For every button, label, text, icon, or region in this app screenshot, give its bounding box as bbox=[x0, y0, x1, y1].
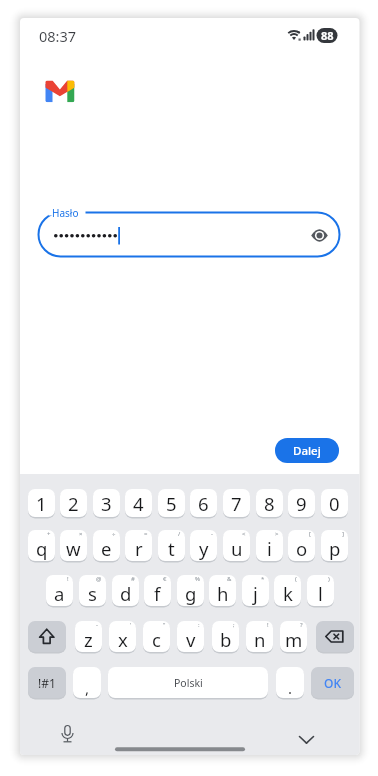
staticText: 9 bbox=[296, 491, 307, 516]
staticText: j bbox=[253, 581, 258, 606]
staticText: 8 bbox=[264, 491, 275, 516]
button[interactable] bbox=[307, 223, 332, 248]
staticText: n bbox=[254, 627, 266, 652]
button[interactable]: u bbox=[223, 530, 250, 561]
staticText: ÷ bbox=[112, 530, 116, 538]
staticText: h bbox=[217, 581, 229, 606]
button[interactable]: s bbox=[79, 575, 106, 606]
staticText: < bbox=[242, 530, 246, 538]
staticText: 4 bbox=[133, 491, 144, 516]
staticText: g bbox=[185, 581, 197, 606]
button[interactable]: f bbox=[144, 575, 171, 606]
staticText: ; bbox=[233, 621, 235, 629]
staticText: Dalej bbox=[293, 443, 321, 459]
button[interactable]: b bbox=[212, 621, 239, 652]
button[interactable]: k bbox=[274, 575, 301, 606]
button[interactable] bbox=[56, 722, 80, 746]
staticText: € bbox=[163, 575, 167, 583]
staticText: ? bbox=[300, 621, 303, 629]
button[interactable]: h bbox=[209, 575, 236, 606]
button[interactable]: p bbox=[321, 530, 348, 561]
button[interactable]: 1 bbox=[28, 489, 55, 517]
staticText: 6 bbox=[198, 491, 209, 516]
button[interactable]: d bbox=[112, 575, 139, 606]
staticText: 88 bbox=[321, 28, 334, 43]
staticText: 2 bbox=[68, 491, 79, 516]
button[interactable]: e bbox=[93, 530, 120, 561]
button[interactable] bbox=[316, 621, 354, 652]
button[interactable]: 7 bbox=[223, 489, 250, 517]
staticText: 0 bbox=[329, 491, 340, 516]
button[interactable]: l bbox=[307, 575, 334, 606]
button[interactable]: 8 bbox=[256, 489, 283, 517]
button[interactable]: c bbox=[143, 621, 170, 652]
staticText: q bbox=[36, 536, 48, 561]
button[interactable]: a bbox=[46, 575, 73, 606]
staticText: ( bbox=[295, 575, 297, 583]
staticText: m bbox=[285, 627, 303, 652]
button[interactable]: !#1 bbox=[28, 667, 66, 698]
staticText: t bbox=[168, 536, 175, 561]
button[interactable]: z bbox=[75, 621, 102, 652]
button[interactable]: o bbox=[288, 530, 315, 561]
button[interactable]: 6 bbox=[190, 489, 217, 517]
button[interactable]: . bbox=[276, 667, 304, 698]
button[interactable]: , bbox=[73, 667, 101, 698]
staticText: Hasło bbox=[52, 206, 79, 220]
button[interactable]: w bbox=[60, 530, 87, 561]
button[interactable] bbox=[294, 728, 319, 748]
staticText: ' bbox=[130, 621, 132, 629]
staticText: c bbox=[152, 627, 161, 652]
staticText: o bbox=[296, 536, 308, 561]
button[interactable]: OK bbox=[311, 667, 354, 698]
staticText: = bbox=[144, 530, 148, 538]
button[interactable]: q bbox=[28, 530, 55, 561]
staticText: # bbox=[131, 575, 135, 583]
button[interactable]: y bbox=[190, 530, 217, 561]
button[interactable]: r bbox=[125, 530, 152, 561]
button[interactable]: t bbox=[158, 530, 185, 561]
button[interactable]: Dalej bbox=[275, 438, 339, 463]
button[interactable] bbox=[39, 213, 340, 257]
button[interactable]: j bbox=[242, 575, 269, 606]
staticText: f bbox=[154, 581, 161, 606]
staticText: i bbox=[267, 536, 272, 561]
button[interactable]: g bbox=[177, 575, 204, 606]
button[interactable]: 4 bbox=[125, 489, 152, 517]
staticText: × bbox=[79, 530, 83, 538]
staticText: e bbox=[101, 536, 112, 561]
button[interactable]: 5 bbox=[158, 489, 185, 517]
button[interactable]: 2 bbox=[60, 489, 87, 517]
button[interactable] bbox=[28, 621, 66, 652]
staticText: , bbox=[85, 678, 90, 698]
staticText: - bbox=[96, 621, 98, 629]
button[interactable]: n bbox=[246, 621, 273, 652]
staticText: r bbox=[135, 536, 143, 561]
button[interactable]: x bbox=[109, 621, 136, 652]
button[interactable]: i bbox=[256, 530, 283, 561]
staticText: 08:37 bbox=[39, 26, 77, 46]
staticText: x bbox=[118, 627, 128, 652]
staticText: k bbox=[283, 581, 293, 606]
staticText: 5 bbox=[166, 491, 177, 516]
button[interactable]: v bbox=[177, 621, 204, 652]
staticText: & bbox=[227, 575, 232, 583]
staticText: . bbox=[288, 678, 293, 698]
staticText: ! bbox=[267, 621, 269, 629]
staticText: - bbox=[211, 530, 213, 538]
staticText: l bbox=[318, 581, 323, 606]
button[interactable]: 0 bbox=[321, 489, 348, 517]
button[interactable]: Polski bbox=[108, 667, 268, 698]
staticText: a bbox=[54, 581, 65, 606]
staticText: OK bbox=[324, 675, 341, 691]
button[interactable]: m bbox=[280, 621, 307, 652]
staticText: > bbox=[275, 530, 279, 538]
staticText: " bbox=[163, 621, 166, 629]
staticText: y bbox=[199, 536, 209, 561]
staticText: z bbox=[84, 627, 93, 652]
button[interactable]: 3 bbox=[93, 489, 120, 517]
staticText: ] bbox=[342, 530, 344, 538]
button[interactable]: 9 bbox=[288, 489, 315, 517]
staticText: !#1 bbox=[38, 675, 56, 691]
staticText: ) bbox=[328, 575, 330, 583]
